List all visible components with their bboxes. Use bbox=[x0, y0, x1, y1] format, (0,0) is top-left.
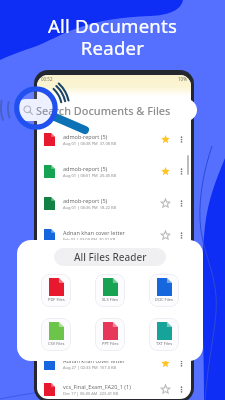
button[interactable]: CSV Files bbox=[41, 318, 71, 351]
staticText: PDF Files bbox=[48, 297, 65, 302]
button[interactable]: PDF Files bbox=[41, 274, 71, 307]
button[interactable]: vcs_Final_Exam_FA20_1 (1) bbox=[37, 379, 191, 399]
other: More options bbox=[177, 135, 186, 144]
staticText: admob-report (5) bbox=[63, 261, 108, 268]
staticText: Feb 03 | 03:09 PM 30.01 KB bbox=[63, 237, 116, 242]
staticText: All Files Reader bbox=[74, 250, 147, 264]
button[interactable]: admob-report (5) bbox=[37, 251, 191, 283]
staticText: 00:52 bbox=[41, 76, 53, 82]
staticText: Aug 01 | 06:38 PM 37.08 KB bbox=[63, 141, 117, 146]
button[interactable]: Adnan khan cover letter bbox=[37, 219, 191, 251]
button[interactable]: admob-report (5) bbox=[37, 123, 191, 155]
staticText: 10% bbox=[178, 76, 187, 82]
other: More options bbox=[177, 385, 186, 394]
other: More options bbox=[177, 359, 186, 368]
other: Favourite bbox=[161, 359, 170, 368]
button[interactable]: admob-report (5) bbox=[37, 283, 191, 315]
button[interactable]: presentation final bbox=[37, 315, 191, 347]
button[interactable]: TXT Files bbox=[149, 318, 179, 351]
staticText: admob-report (5) bbox=[63, 293, 108, 300]
staticText: PPT Files bbox=[102, 341, 119, 346]
other: Favourite bbox=[161, 385, 170, 394]
other: More options bbox=[177, 199, 186, 208]
other: Favourite bbox=[161, 167, 170, 176]
staticText: TXT Files bbox=[156, 341, 173, 346]
staticText: Adnan khan cover letter bbox=[63, 357, 125, 364]
button[interactable]: admob-report (5) bbox=[37, 155, 191, 187]
button[interactable]: PPT Files bbox=[95, 318, 125, 351]
staticText: All Documents Reader bbox=[0, 13, 225, 60]
other: Favourite bbox=[161, 295, 170, 304]
staticText: Search Documents & Files bbox=[36, 103, 171, 118]
staticText: admob-report (5) bbox=[63, 133, 108, 140]
other: More options bbox=[177, 167, 186, 176]
staticText: Jul 11 | 11:21 AM 12.80 KB bbox=[63, 333, 114, 338]
staticText: Dec 17 | 06:00 AM 223.41 KB bbox=[63, 391, 119, 396]
staticText: CSV Files bbox=[48, 341, 65, 346]
other: More options bbox=[177, 327, 186, 336]
button[interactable]: admob-report (5) bbox=[37, 187, 191, 219]
staticText: Aug 27 | 02:33 PM 157.0 KB bbox=[63, 365, 117, 370]
button[interactable]: Search Documents & Files bbox=[15, 99, 197, 121]
button[interactable]: XLS Files bbox=[95, 274, 125, 307]
staticText: Aug 01 | 06:36 PM 18.22 KB bbox=[63, 205, 117, 210]
staticText: Aug 01 | 06:36 PM 18.22 KB bbox=[63, 301, 117, 306]
other: Favourite bbox=[161, 135, 170, 144]
other: Favourite bbox=[161, 231, 170, 240]
button[interactable]: DOC Files bbox=[149, 274, 179, 307]
other: More options bbox=[177, 295, 186, 304]
button[interactable]: Adnan khan cover letter bbox=[37, 347, 191, 379]
staticText: vcs_Final_Exam_FA20_1 (1) bbox=[63, 383, 131, 390]
staticText: XLS Files bbox=[102, 297, 118, 302]
staticText: admob-report (5) bbox=[63, 197, 108, 204]
staticText: presentation final bbox=[63, 325, 109, 332]
staticText: admob-report (5) bbox=[63, 165, 108, 172]
staticText: Aug 01 | 06:51 PM 20.45 KB bbox=[63, 173, 117, 178]
button[interactable]: All Files Reader bbox=[54, 248, 166, 266]
staticText: Adnan khan cover letter bbox=[63, 229, 125, 236]
other: More options bbox=[177, 231, 186, 240]
other: Favourite bbox=[161, 199, 170, 208]
staticText: DOC Files bbox=[155, 297, 173, 302]
